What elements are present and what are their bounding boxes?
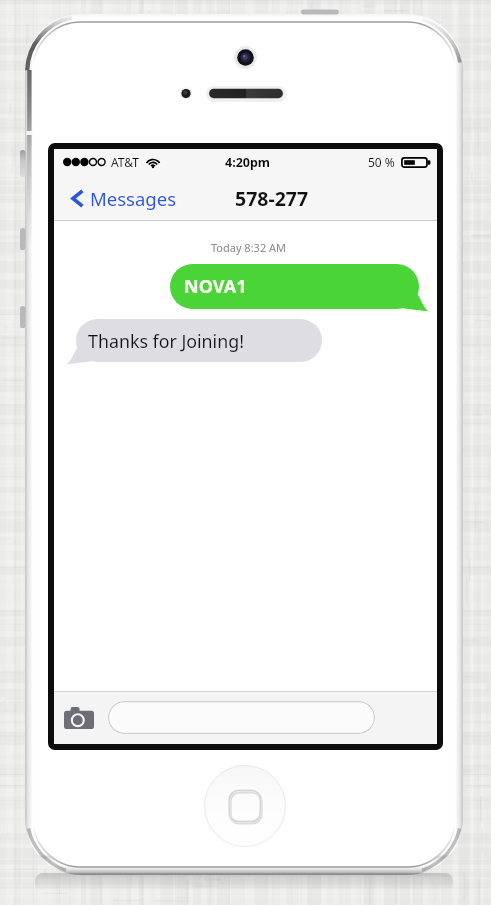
staticText: Thanks for Joining! <box>88 329 244 353</box>
button[interactable]: Message input <box>108 701 375 734</box>
staticText: NOVA1 <box>184 274 247 299</box>
staticText: 578-277 <box>235 185 309 212</box>
staticText: AT&T <box>111 154 139 170</box>
staticText: 50 % <box>368 154 395 170</box>
button[interactable]: Home <box>204 765 286 847</box>
staticText: 4:20pm <box>225 154 271 171</box>
staticText: Messages <box>90 186 176 211</box>
button[interactable]: Messages <box>54 180 184 217</box>
staticText: Today 8:32 AM <box>57 240 440 255</box>
button[interactable]: Camera <box>64 707 94 729</box>
